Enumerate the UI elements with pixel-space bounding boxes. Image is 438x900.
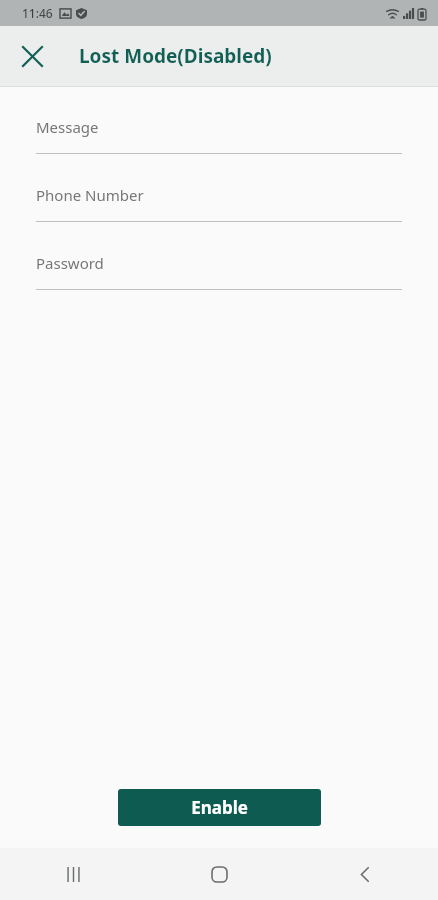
- staticText: Message: [36, 117, 99, 137]
- button[interactable]: Back: [292, 848, 438, 900]
- staticText: Phone Number: [36, 185, 144, 205]
- staticText: 11:46: [22, 5, 53, 21]
- button[interactable]: Enable: [118, 789, 321, 826]
- staticText: Lost Mode(Disabled): [79, 43, 272, 69]
- button[interactable]: Close: [8, 32, 56, 80]
- button[interactable]: Phone Number: [36, 179, 402, 222]
- button[interactable]: Message: [36, 111, 402, 154]
- button[interactable]: Home: [146, 848, 292, 900]
- button[interactable]: Recents: [0, 848, 146, 900]
- staticText: Enable: [191, 796, 248, 819]
- button[interactable]: Password: [36, 247, 402, 290]
- staticText: Password: [36, 253, 104, 273]
